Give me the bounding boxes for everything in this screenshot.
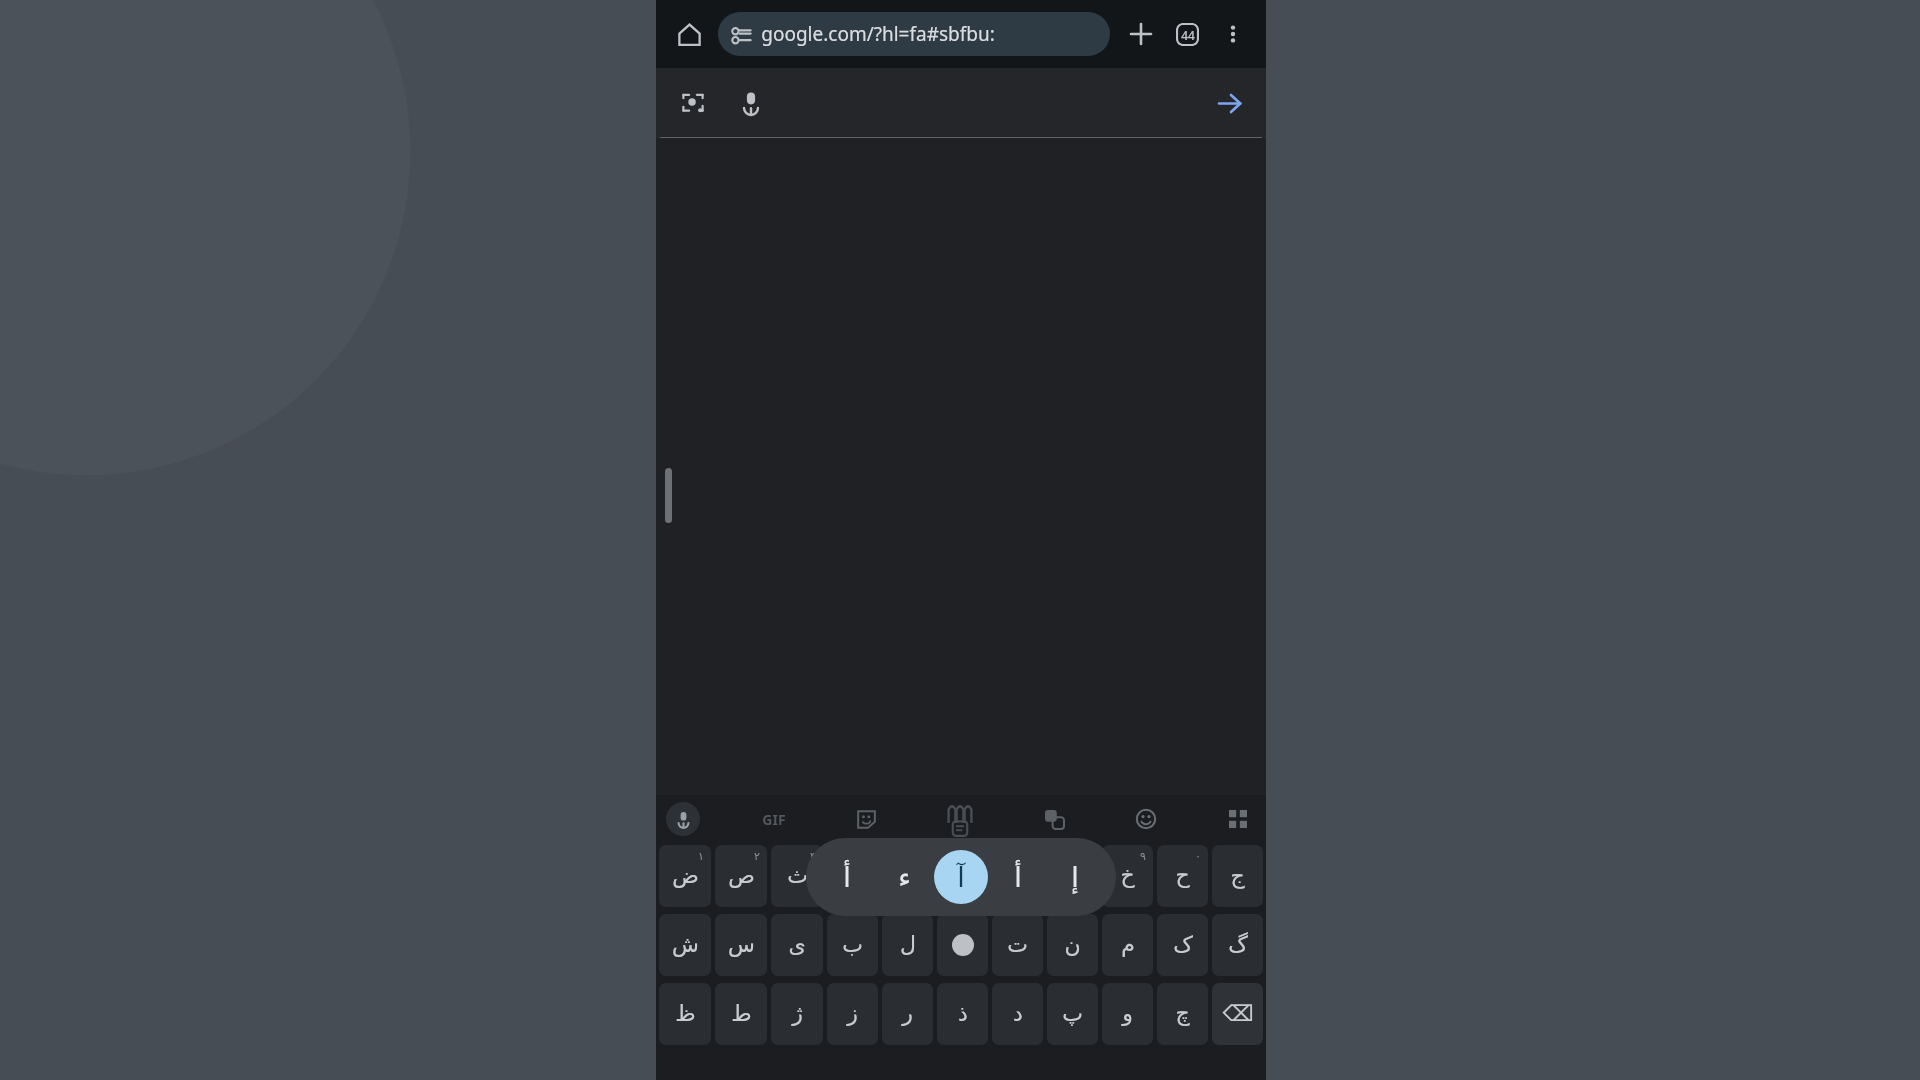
staticText: ب (842, 932, 863, 958)
button[interactable]: آ (934, 850, 988, 904)
staticText: 44 (1181, 27, 1195, 43)
staticText: ط (731, 1001, 752, 1027)
staticText: google.com/?hl=fa#sbfbu: (761, 21, 995, 47)
button[interactable]: Voice input (666, 802, 700, 836)
button[interactable]: ف (882, 845, 933, 907)
button[interactable]: ش (659, 914, 711, 976)
button[interactable]: و (1102, 983, 1153, 1045)
button[interactable]: أ (991, 850, 1045, 904)
button[interactable]: Translate (1036, 801, 1072, 837)
button[interactable]: ع (992, 845, 1043, 907)
staticText: ۳ (810, 850, 816, 863)
button[interactable]: ذ (937, 983, 988, 1045)
button[interactable]: Emoji (1128, 801, 1164, 837)
staticText: ۹ (1140, 850, 1146, 863)
button[interactable]: ل (882, 914, 933, 976)
button[interactable]: د (992, 983, 1043, 1045)
staticText: ۱ (698, 850, 704, 863)
staticText: ث (787, 863, 808, 889)
staticText: ت (1007, 932, 1028, 958)
button[interactable]: ج (1212, 845, 1263, 907)
button[interactable]: google.com/?hl=fa#sbfbu: (718, 12, 1110, 56)
button[interactable]: س (715, 914, 767, 976)
staticText: ض (672, 863, 699, 889)
button[interactable]: Tabs: 44 open (1164, 11, 1210, 57)
staticText: غ (956, 863, 970, 889)
button[interactable]: More options (1210, 11, 1256, 57)
button[interactable]: ح (1157, 845, 1208, 907)
staticText: س (728, 932, 755, 958)
staticText: ک (1173, 932, 1193, 958)
staticText: و (1122, 1001, 1133, 1027)
button[interactable]: ث (771, 845, 823, 907)
button[interactable]: چ (1157, 983, 1208, 1045)
staticText: ⌫ (1222, 1001, 1254, 1027)
button[interactable]: ی (771, 914, 823, 976)
button[interactable]: إ (1048, 850, 1102, 904)
staticText: ز (847, 1001, 858, 1027)
button[interactable]: New tab (1118, 11, 1164, 57)
staticText: GIF (762, 810, 786, 829)
button[interactable]: ر (882, 983, 933, 1045)
staticText: إ (1071, 862, 1079, 893)
button[interactable]: م (1102, 914, 1153, 976)
staticText: أ (1014, 862, 1022, 893)
staticText: ۰ (1195, 850, 1201, 863)
staticText: گ (1228, 932, 1248, 958)
staticText: خ (1120, 863, 1135, 889)
button[interactable]: Clipboard (940, 799, 980, 839)
button[interactable]: More keyboard options (1220, 801, 1256, 837)
button[interactable]: ⌫ (1212, 983, 1263, 1045)
button[interactable]: ء (877, 850, 931, 904)
button[interactable]: خ (1102, 845, 1153, 907)
button[interactable]: ق (827, 845, 878, 907)
staticText: ن (1064, 932, 1081, 958)
staticText: د (1013, 1001, 1023, 1027)
staticText: م (1121, 932, 1135, 958)
button[interactable]: ط (715, 983, 767, 1045)
staticText: چ (1175, 1001, 1190, 1027)
button[interactable]: غ (937, 845, 988, 907)
staticText: ص (728, 863, 755, 889)
staticText: أ (843, 862, 851, 893)
staticText: ۲ (754, 850, 760, 863)
button[interactable]: Stickers (848, 801, 884, 837)
staticText: ع (1011, 863, 1025, 889)
button[interactable]: ه (1047, 845, 1098, 907)
button[interactable]: گ (1212, 914, 1263, 976)
button[interactable]: پ (1047, 983, 1098, 1045)
staticText: ۶ (975, 850, 981, 863)
staticText: ذ (958, 1001, 968, 1027)
button[interactable] (937, 914, 988, 976)
button[interactable]: ص (715, 845, 767, 907)
staticText: آ (957, 862, 965, 893)
staticText: ف (896, 863, 919, 889)
button[interactable]: Home (666, 11, 712, 57)
button[interactable]: ت (992, 914, 1043, 976)
staticText: ء (898, 862, 911, 893)
staticText: پ (1062, 1001, 1083, 1027)
button[interactable]: ن (1047, 914, 1098, 976)
button[interactable]: ظ (659, 983, 711, 1045)
button[interactable]: ز (827, 983, 878, 1045)
staticText: ه (1067, 863, 1079, 889)
button[interactable]: ژ (771, 983, 823, 1045)
button[interactable]: ب (827, 914, 878, 976)
button[interactable]: ک (1157, 914, 1208, 976)
staticText: ح (1175, 863, 1190, 889)
button[interactable]: GIF (756, 801, 792, 837)
button[interactable]: أ (820, 850, 874, 904)
button[interactable]: Go (1206, 80, 1252, 126)
button[interactable]: ض (659, 845, 711, 907)
staticText: ی (788, 932, 806, 958)
staticText: ق (844, 863, 862, 889)
button[interactable]: Voice search (728, 80, 774, 126)
staticText: ج (1230, 863, 1245, 889)
staticText: ر (902, 1001, 913, 1027)
button[interactable]: Search by image (670, 80, 716, 126)
staticText: ژ (792, 1001, 803, 1027)
